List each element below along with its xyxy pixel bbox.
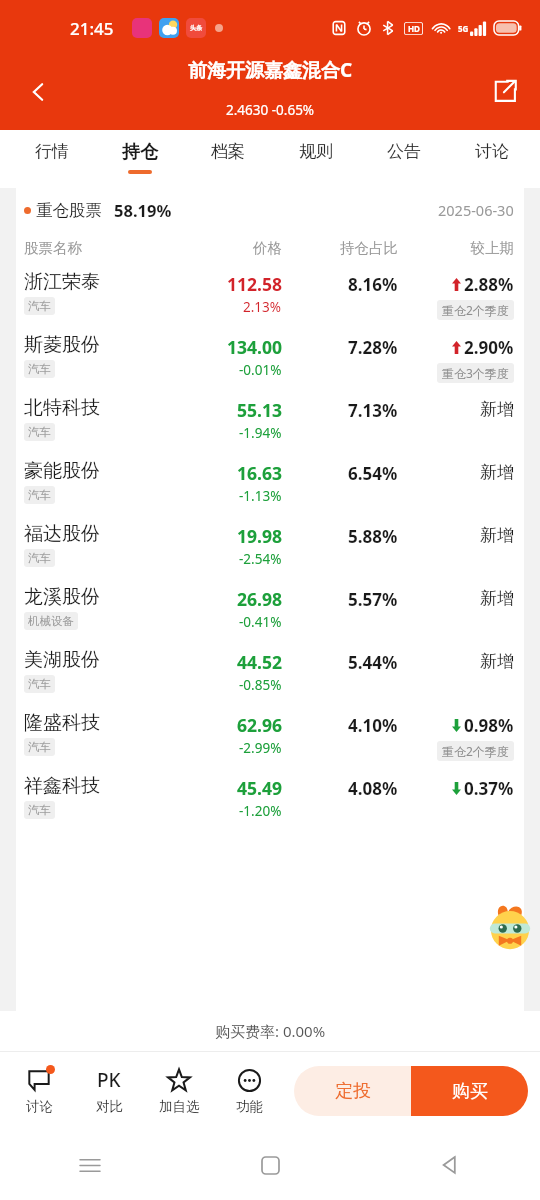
- staticText: 55.13: [237, 398, 282, 422]
- button[interactable]: 讨论: [4, 1052, 74, 1130]
- staticText: 对比: [96, 1098, 123, 1115]
- staticText: 112.58: [227, 272, 282, 296]
- staticText: 祥鑫科技: [24, 774, 100, 798]
- staticText: 16.63: [237, 461, 282, 485]
- staticText: -0.01%: [239, 361, 282, 379]
- button[interactable]: 美湖股份: [16, 642, 524, 705]
- staticText: 重仓2个季度: [442, 302, 509, 318]
- staticText: 龙溪股份: [24, 585, 100, 609]
- staticText: 汽车: [28, 425, 51, 439]
- staticText: 2.4630 -0.65%: [226, 101, 315, 119]
- button[interactable]: 加自选: [144, 1052, 214, 1130]
- button[interactable]: 讨论: [448, 130, 536, 188]
- staticText: 购买费率: 0.00%: [215, 1021, 326, 1041]
- button[interactable]: 豪能股份: [16, 453, 524, 516]
- staticText: 44.52: [237, 650, 282, 674]
- staticText: 2.90%: [464, 336, 514, 359]
- button[interactable]: 返回: [360, 1130, 540, 1200]
- button[interactable]: 公告: [360, 130, 448, 188]
- button[interactable]: 祥鑫科技: [16, 768, 524, 831]
- button[interactable]: 浙江荣泰: [16, 264, 524, 327]
- staticText: 26.98: [237, 587, 282, 611]
- staticText: 2025-06-30: [438, 200, 514, 220]
- staticText: 新增: [480, 399, 514, 420]
- button[interactable]: 最近任务: [0, 1130, 180, 1200]
- staticText: 档案: [211, 141, 245, 162]
- button[interactable]: 功能: [214, 1052, 284, 1130]
- staticText: 新增: [480, 588, 514, 609]
- staticText: 规则: [299, 141, 333, 162]
- staticText: 价格: [181, 239, 282, 257]
- staticText: 新增: [480, 525, 514, 546]
- staticText: 重仓3个季度: [442, 365, 509, 381]
- staticText: PK: [97, 1067, 121, 1093]
- staticText: 134.00: [227, 335, 282, 359]
- button[interactable]: 档案: [184, 130, 272, 188]
- staticText: 隆盛科技: [24, 711, 100, 735]
- staticText: 汽车: [28, 488, 51, 502]
- staticText: 2.88%: [464, 273, 514, 296]
- staticText: 4.08%: [348, 777, 398, 800]
- staticText: HD: [408, 23, 420, 34]
- button[interactable]: 龙溪股份: [16, 579, 524, 642]
- staticText: 5G: [458, 23, 469, 34]
- button[interactable]: PK: [74, 1052, 144, 1130]
- button[interactable]: 北特科技: [16, 390, 524, 453]
- button[interactable]: 返回: [14, 68, 62, 116]
- staticText: -0.41%: [239, 613, 282, 631]
- staticText: 公告: [387, 141, 421, 162]
- staticText: 功能: [236, 1098, 263, 1115]
- button[interactable]: 助手: [482, 901, 538, 957]
- staticText: 行情: [35, 141, 69, 162]
- staticText: 豪能股份: [24, 459, 100, 483]
- staticText: 2.13%: [243, 298, 282, 316]
- staticText: 美湖股份: [24, 648, 100, 672]
- staticText: 斯菱股份: [24, 333, 100, 357]
- staticText: 持仓占比: [282, 239, 398, 257]
- button[interactable]: 购买: [411, 1066, 528, 1116]
- staticText: 浙江荣泰: [24, 270, 100, 294]
- staticText: 讨论: [26, 1098, 53, 1115]
- staticText: 5.88%: [348, 525, 398, 548]
- staticText: 汽车: [28, 362, 51, 376]
- staticText: -2.54%: [239, 550, 282, 568]
- staticText: 7.28%: [348, 336, 398, 359]
- staticText: 定投: [335, 1080, 371, 1103]
- staticText: -2.99%: [239, 739, 282, 757]
- staticText: 讨论: [475, 141, 509, 162]
- button[interactable]: 主屏幕: [180, 1130, 360, 1200]
- staticText: 汽车: [28, 677, 51, 691]
- staticText: 汽车: [28, 803, 51, 817]
- staticText: 0.37%: [464, 777, 514, 800]
- button[interactable]: 斯菱股份: [16, 327, 524, 390]
- staticText: 8.16%: [348, 273, 398, 296]
- staticText: 北特科技: [24, 396, 100, 420]
- staticText: 21:45: [70, 17, 114, 40]
- staticText: 5.57%: [348, 588, 398, 611]
- staticText: -1.94%: [239, 424, 282, 442]
- button[interactable]: 隆盛科技: [16, 705, 524, 768]
- button[interactable]: 持仓: [96, 130, 184, 188]
- staticText: 19.98: [237, 524, 282, 548]
- staticText: 头条: [190, 24, 202, 32]
- staticText: 重仓2个季度: [442, 743, 509, 759]
- staticText: 0.98%: [464, 714, 514, 737]
- button[interactable]: 分享: [482, 68, 528, 114]
- staticText: 62.96: [237, 713, 282, 737]
- button[interactable]: 福达股份: [16, 516, 524, 579]
- staticText: -1.13%: [239, 487, 282, 505]
- staticText: 新增: [480, 462, 514, 483]
- staticText: 新增: [480, 651, 514, 672]
- staticText: 5.44%: [348, 651, 398, 674]
- staticText: 股票名称: [24, 239, 181, 257]
- staticText: 7.13%: [348, 399, 398, 422]
- staticText: 4.10%: [348, 714, 398, 737]
- button[interactable]: 定投: [294, 1066, 411, 1116]
- staticText: 机械设备: [28, 614, 74, 628]
- button[interactable]: 行情: [8, 130, 96, 188]
- staticText: 汽车: [28, 299, 51, 313]
- button[interactable]: 规则: [272, 130, 360, 188]
- staticText: 汽车: [28, 740, 51, 754]
- staticText: 重仓股票: [36, 200, 102, 221]
- staticText: 45.49: [237, 776, 282, 800]
